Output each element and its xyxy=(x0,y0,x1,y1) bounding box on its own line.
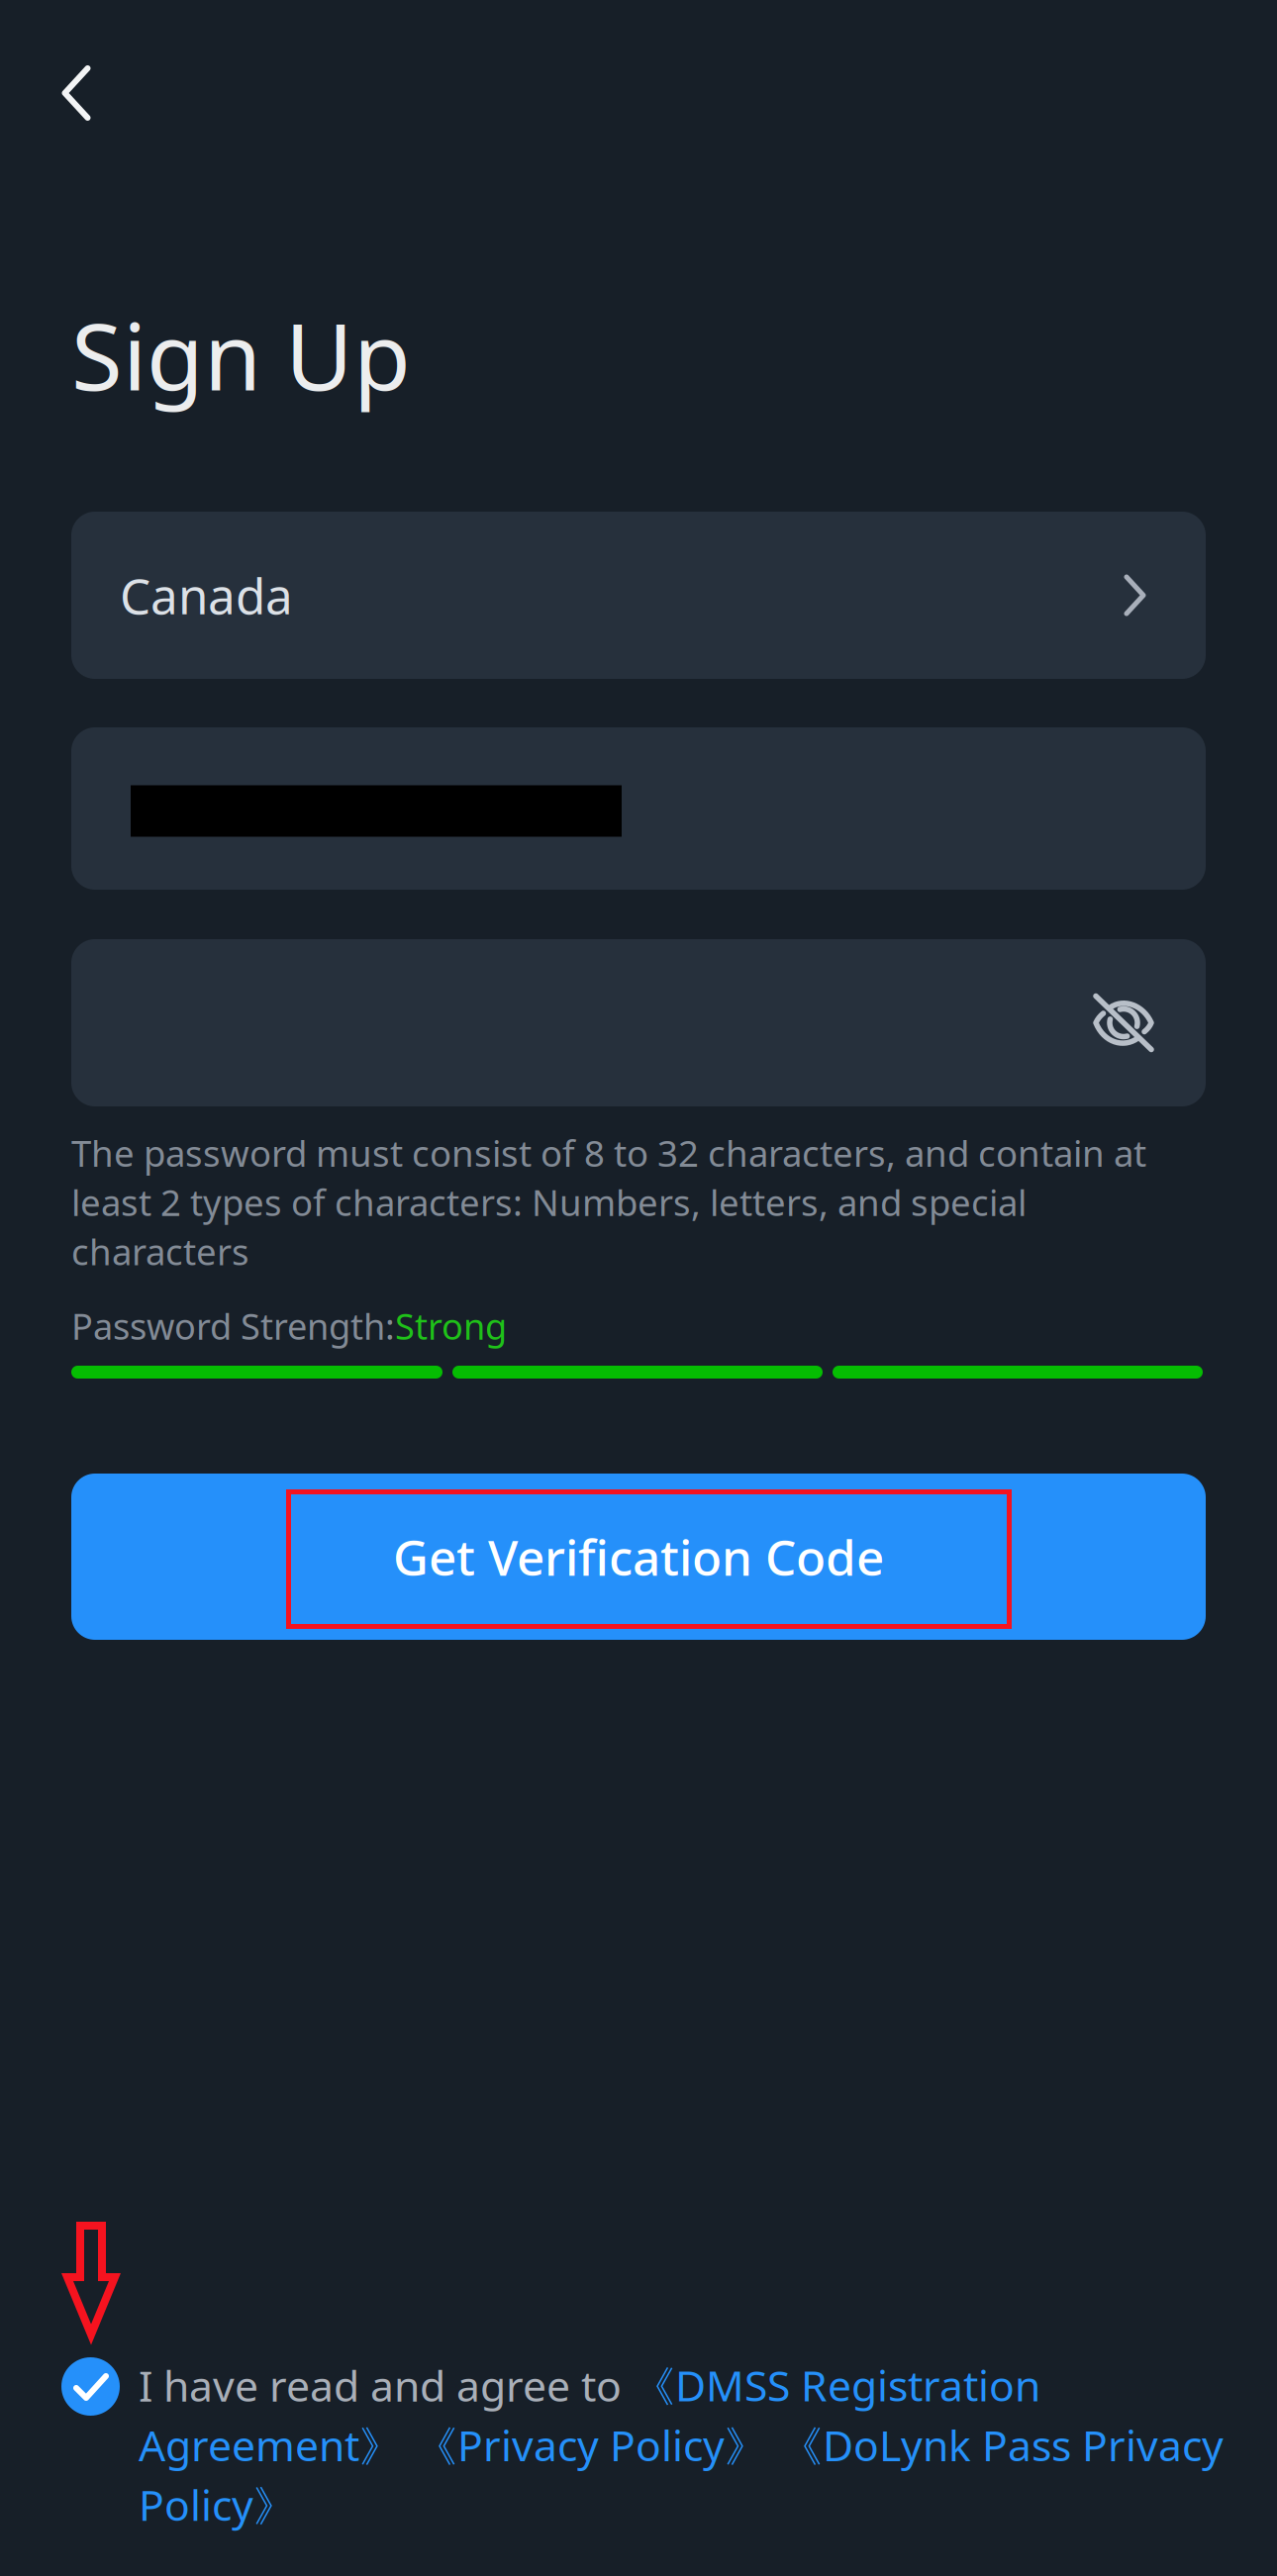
staticText: Get Verification Code xyxy=(393,1523,884,1590)
staticText: The password must consist of 8 to 32 cha… xyxy=(71,1128,1146,1177)
button[interactable]: 《DMSS Registration xyxy=(633,2356,1040,2414)
staticText: Agreement》 《Privacy Policy》 《DoLynk Pass… xyxy=(139,2416,1224,2474)
staticText: Strong xyxy=(395,1301,507,1350)
staticText: least 2 types of characters: Numbers, le… xyxy=(71,1177,1027,1227)
button[interactable]: Back xyxy=(17,34,136,152)
button[interactable]: Agreement》 《Privacy Policy》 《DoLynk Pass… xyxy=(139,2416,1224,2474)
button[interactable]: Policy》 xyxy=(139,2476,296,2533)
staticText: Policy》 xyxy=(139,2476,296,2533)
staticText: I have read and agree to xyxy=(139,2356,633,2414)
staticText: characters xyxy=(71,1227,249,1276)
button[interactable]: Canada xyxy=(71,512,1206,679)
button[interactable]: I have read and agree to the agreements xyxy=(61,2357,120,2416)
staticText: Sign Up xyxy=(71,291,411,418)
staticText: Canada xyxy=(120,562,293,629)
button[interactable]: Show password xyxy=(1068,967,1179,1078)
staticText: Password Strength: xyxy=(71,1301,395,1350)
button[interactable]: Get Verification Code xyxy=(71,1474,1206,1640)
staticText: 《DMSS Registration xyxy=(633,2356,1040,2414)
